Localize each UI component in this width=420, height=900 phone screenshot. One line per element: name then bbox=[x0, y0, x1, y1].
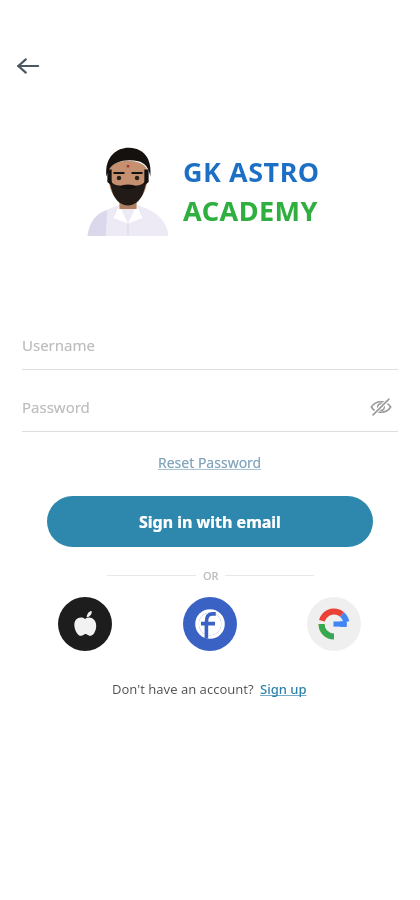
staticText: ACADEMY bbox=[183, 192, 318, 229]
staticText: GK ASTRO bbox=[183, 153, 320, 190]
staticText: Sign in with email bbox=[139, 511, 281, 533]
button[interactable]: Back bbox=[8, 46, 48, 86]
staticText: Reset Password bbox=[158, 453, 262, 472]
button[interactable]: Reset Password bbox=[152, 450, 268, 475]
button[interactable]: Sign in with Apple bbox=[58, 597, 112, 651]
button[interactable]: Toggle password visibility bbox=[364, 390, 398, 424]
button[interactable]: Password bbox=[22, 382, 398, 432]
button[interactable]: Sign in with Google bbox=[307, 597, 361, 651]
button[interactable]: Username bbox=[22, 320, 398, 370]
staticText: Username bbox=[22, 335, 95, 355]
staticText: OR bbox=[203, 568, 219, 583]
staticText: Don't have an account? bbox=[112, 680, 258, 698]
staticText: Password bbox=[22, 397, 90, 417]
staticText: Sign up bbox=[260, 680, 307, 698]
button[interactable]: Sign up bbox=[258, 678, 309, 700]
button[interactable]: Sign in with Facebook bbox=[183, 597, 237, 651]
button[interactable]: Sign in with email bbox=[47, 496, 373, 547]
